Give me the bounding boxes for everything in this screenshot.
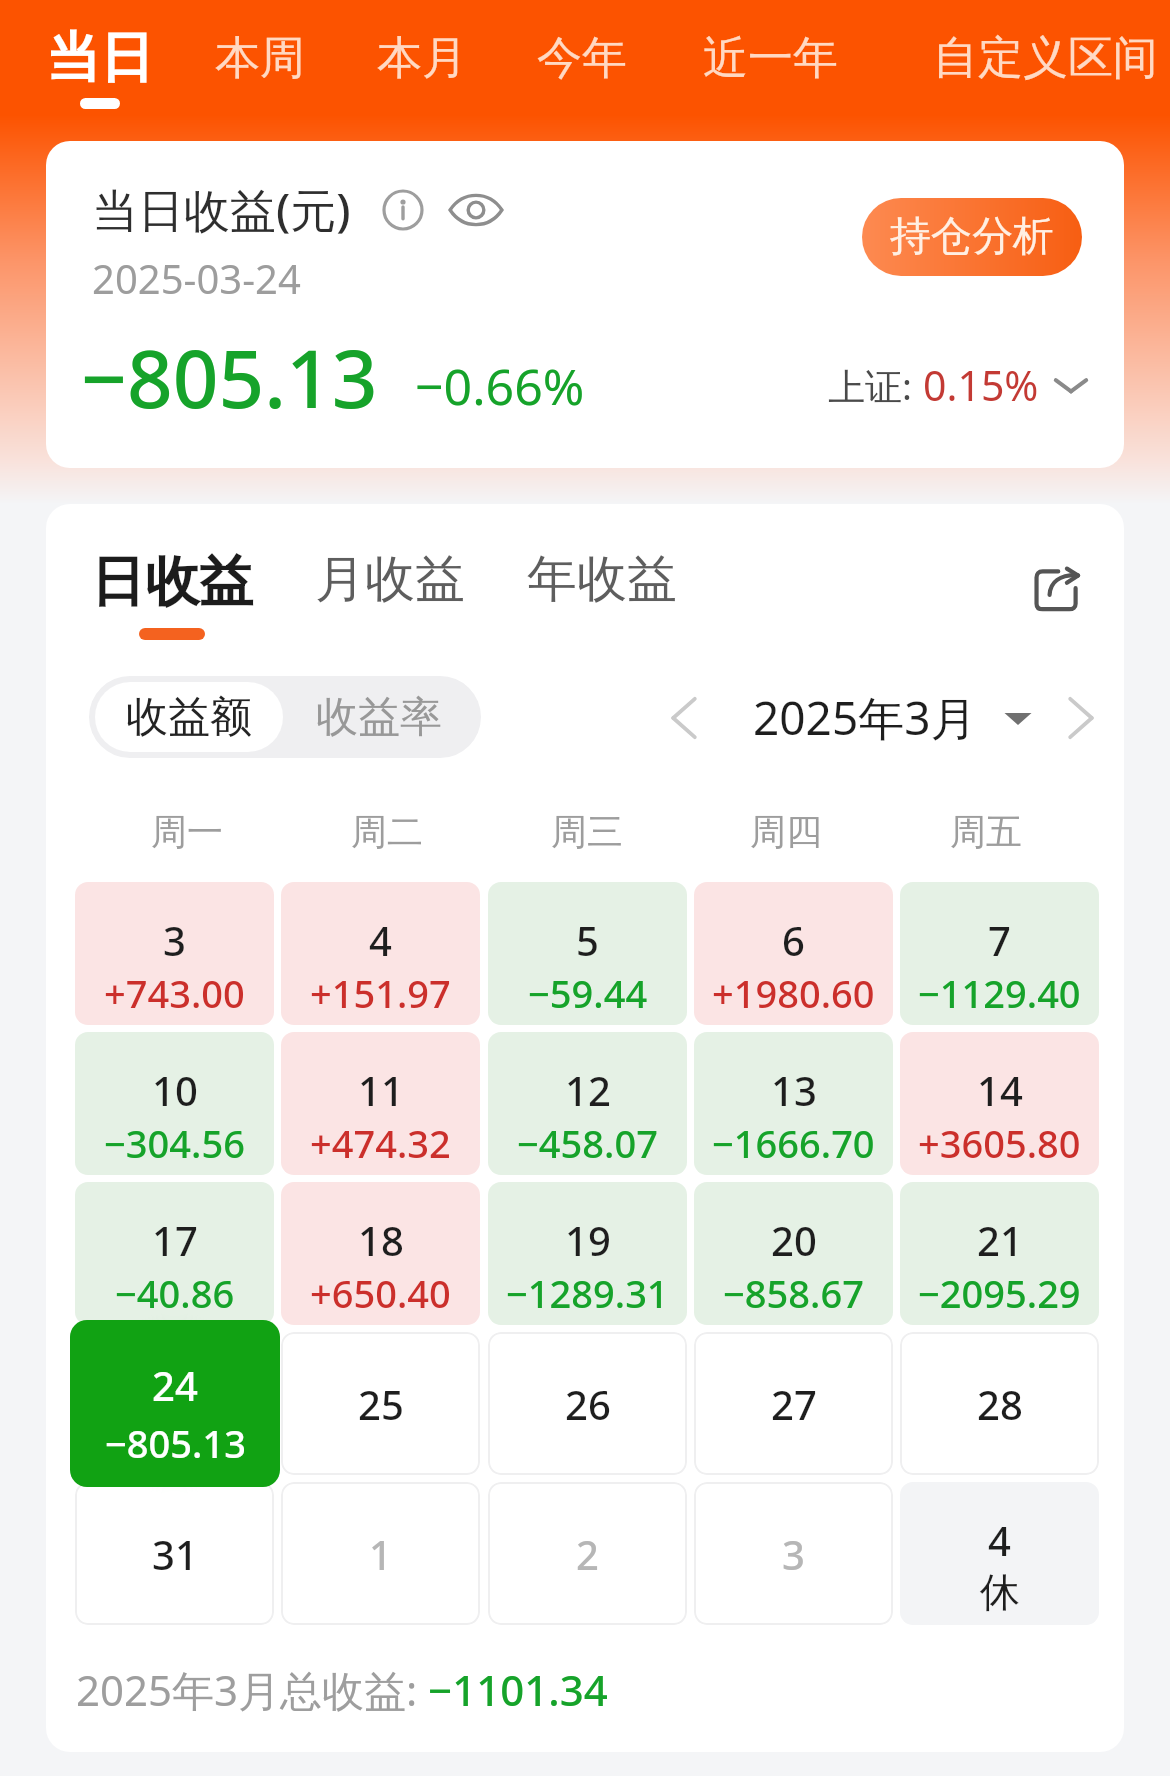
staticText: 3 xyxy=(163,913,186,967)
button[interactable]: 2025年3月 xyxy=(753,686,1033,749)
staticText: 5 xyxy=(576,913,599,967)
staticText: +743.00 xyxy=(104,967,245,1019)
staticText: 31 xyxy=(152,1527,198,1581)
button[interactable]: 26 xyxy=(488,1332,687,1475)
button[interactable]: 上证: xyxy=(828,357,1091,413)
button[interactable]: 17 xyxy=(75,1182,274,1325)
button[interactable]: 3 xyxy=(694,1482,893,1625)
button[interactable]: 5 xyxy=(488,882,687,1025)
button[interactable]: Share xyxy=(1026,559,1088,621)
staticText: 收益额 xyxy=(126,691,252,744)
button[interactable]: 本周 xyxy=(205,25,315,92)
button[interactable]: 28 xyxy=(900,1332,1099,1475)
staticText: 11 xyxy=(358,1063,404,1117)
staticText: 周四 xyxy=(750,809,822,853)
other: Toggle visibility xyxy=(449,183,503,237)
button[interactable]: 今年 xyxy=(527,25,637,92)
staticText: −1289.31 xyxy=(506,1267,669,1319)
staticText: 2025年3月 xyxy=(753,686,977,749)
staticText: 今年 xyxy=(537,30,627,87)
staticText: 24 xyxy=(152,1358,198,1412)
staticText: 6 xyxy=(782,913,805,967)
staticText: 当日 xyxy=(46,24,154,92)
staticText: 周二 xyxy=(351,809,423,853)
staticText: 26 xyxy=(565,1377,611,1431)
staticText: −1101.34 xyxy=(428,1661,608,1718)
staticText: 近一年 xyxy=(703,30,838,87)
button[interactable]: 2 xyxy=(488,1482,687,1625)
staticText: 持仓分析 xyxy=(890,211,1054,263)
button[interactable]: 1 xyxy=(281,1482,480,1625)
button[interactable]: 10 xyxy=(75,1032,274,1175)
button[interactable]: Next month xyxy=(1051,688,1111,748)
other: Info xyxy=(382,189,424,231)
button[interactable]: 日收益 xyxy=(91,548,253,640)
staticText: +1980.60 xyxy=(712,967,875,1019)
staticText: 周五 xyxy=(950,809,1022,853)
staticText: +3605.80 xyxy=(918,1117,1081,1169)
button[interactable]: 收益额 xyxy=(95,682,283,752)
staticText: −304.56 xyxy=(104,1117,245,1169)
staticText: 25 xyxy=(358,1377,404,1431)
button[interactable]: 31 xyxy=(75,1482,274,1625)
staticText: +151.97 xyxy=(310,967,451,1019)
button[interactable]: 月收益 xyxy=(315,548,465,623)
staticText: −40.86 xyxy=(115,1267,235,1319)
button[interactable]: 18 xyxy=(281,1182,480,1325)
button[interactable]: 7 xyxy=(900,882,1099,1025)
staticText: 2 xyxy=(576,1527,599,1581)
staticText: 20 xyxy=(771,1213,817,1267)
button[interactable]: 27 xyxy=(694,1332,893,1475)
button[interactable]: 21 xyxy=(900,1182,1099,1325)
staticText: 2025-03-24 xyxy=(92,251,301,305)
button[interactable]: 4 xyxy=(281,882,480,1025)
button[interactable]: 4 xyxy=(900,1482,1099,1625)
button[interactable]: 3 xyxy=(75,882,274,1025)
staticText: 收益率 xyxy=(316,691,442,744)
staticText: 21 xyxy=(977,1213,1023,1267)
button[interactable]: 本月 xyxy=(367,25,477,92)
button[interactable]: 收益率 xyxy=(283,682,475,752)
button[interactable]: 自定义区间 xyxy=(923,25,1168,92)
staticText: 自定义区间 xyxy=(933,30,1158,87)
staticText: −1666.70 xyxy=(712,1117,875,1169)
staticText: −59.44 xyxy=(528,967,648,1019)
staticText: 月收益 xyxy=(315,548,465,611)
button[interactable]: 13 xyxy=(694,1032,893,1175)
button[interactable]: Previous month xyxy=(654,688,714,748)
staticText: −858.67 xyxy=(723,1267,864,1319)
staticText: 年收益 xyxy=(527,548,677,611)
staticText: 上证: xyxy=(828,360,912,411)
staticText: +474.32 xyxy=(310,1117,451,1169)
staticText: 4 xyxy=(988,1513,1011,1567)
button[interactable]: 24 xyxy=(70,1320,280,1487)
button[interactable]: 近一年 xyxy=(693,25,848,92)
staticText: 3 xyxy=(782,1527,805,1581)
staticText: 7 xyxy=(988,913,1011,967)
staticText: 日收益 xyxy=(91,548,253,616)
staticText: 27 xyxy=(771,1377,817,1431)
button[interactable]: 12 xyxy=(488,1032,687,1175)
button[interactable]: 6 xyxy=(694,882,893,1025)
staticText: −2095.29 xyxy=(918,1267,1081,1319)
button[interactable]: 当日 xyxy=(40,0,160,109)
staticText: +650.40 xyxy=(310,1267,451,1319)
staticText: 19 xyxy=(565,1213,611,1267)
button[interactable]: 25 xyxy=(281,1332,480,1475)
button[interactable]: 14 xyxy=(900,1032,1099,1175)
staticText: 当日收益(元) xyxy=(92,178,351,241)
button[interactable]: 20 xyxy=(694,1182,893,1325)
button[interactable]: 11 xyxy=(281,1032,480,1175)
staticText: 28 xyxy=(977,1377,1023,1431)
staticText: −458.07 xyxy=(517,1117,658,1169)
staticText: 4 xyxy=(369,913,392,967)
button[interactable]: 年收益 xyxy=(527,548,677,623)
staticText: 17 xyxy=(152,1213,198,1267)
button[interactable]: 19 xyxy=(488,1182,687,1325)
button[interactable]: 持仓分析 xyxy=(862,198,1082,276)
staticText: 周一 xyxy=(151,809,223,853)
staticText: 18 xyxy=(358,1213,404,1267)
staticText: 10 xyxy=(152,1063,198,1117)
staticText: 本月 xyxy=(377,30,467,87)
staticText: 14 xyxy=(977,1063,1023,1117)
